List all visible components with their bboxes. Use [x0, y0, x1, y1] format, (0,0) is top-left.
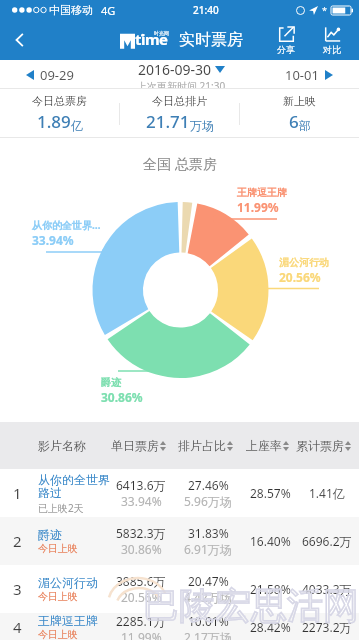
staticText: 21.71: [146, 110, 190, 133]
staticText: 今日上映: [38, 590, 78, 603]
button[interactable]: 今日总排片: [120, 94, 239, 133]
staticText: 上次更新时间 21:30: [137, 79, 226, 89]
button[interactable]: 09-29: [22, 62, 78, 88]
staticText: 王牌逗王牌: [38, 613, 98, 628]
button[interactable]: 新上映: [240, 94, 359, 133]
staticText: 新上映: [283, 94, 316, 108]
button[interactable]: 4: [0, 613, 359, 640]
staticText: 30.86%: [101, 389, 143, 405]
staticText: 上座率: [246, 438, 282, 453]
staticText: 今日总票房: [32, 94, 87, 108]
staticText: 21.58%: [250, 581, 291, 597]
staticText: 2: [13, 531, 22, 551]
button[interactable]: 上座率: [246, 438, 289, 453]
staticText: 4.42万场: [184, 589, 232, 605]
staticText: 分享: [277, 44, 295, 55]
staticText: 16.40%: [250, 533, 291, 549]
staticText: 5.96万场: [184, 493, 232, 509]
staticText: 中国移动: [49, 3, 93, 17]
staticText: 4: [13, 617, 22, 637]
button[interactable]: 10-01: [281, 62, 337, 88]
staticText: 21:40: [193, 3, 219, 17]
staticText: 部: [299, 118, 311, 133]
staticText: 已上映2天: [38, 501, 84, 515]
button[interactable]: 影片名称: [38, 438, 86, 453]
staticText: 时光网: [154, 30, 169, 36]
staticText: 2285.1万: [116, 613, 166, 629]
staticText: 28.57%: [250, 485, 291, 501]
staticText: 28.42%: [250, 619, 291, 635]
button[interactable]: 2016-09-30: [137, 60, 226, 89]
button[interactable]: 单日票房: [111, 438, 166, 453]
staticText: 累计票房: [296, 438, 344, 453]
staticText: 20.56%: [279, 269, 321, 285]
staticText: 3: [13, 579, 22, 599]
staticText: *: [322, 4, 327, 16]
staticText: 2273.2万: [302, 619, 352, 635]
staticText: 1.89: [37, 110, 71, 133]
button[interactable]: 1: [0, 469, 359, 517]
staticText: 湄公河行动: [279, 256, 329, 269]
staticText: 6.91万场: [184, 541, 232, 557]
staticText: 4G: [101, 3, 116, 18]
staticText: 6413.6万: [116, 477, 166, 493]
staticText: 今日总排片: [152, 94, 207, 108]
staticText: 11.99%: [237, 199, 279, 215]
staticText: 10-01: [285, 66, 319, 84]
staticText: 11.99%: [121, 629, 162, 640]
staticText: 单日票房: [111, 438, 159, 453]
staticText: 33.94%: [32, 232, 74, 248]
staticText: 湄公河行动: [38, 575, 98, 590]
button[interactable]: 累计票房: [296, 438, 351, 453]
staticText: 1.41亿: [309, 485, 345, 501]
staticText: 爵迹: [38, 527, 62, 542]
staticText: 爵迹: [101, 376, 121, 389]
staticText: 4033.3万: [302, 581, 352, 597]
staticText: 6: [289, 110, 299, 133]
staticText: 王牌逗王牌: [237, 186, 287, 199]
staticText: 20.47%: [188, 573, 229, 589]
button[interactable]: 今日总票房: [0, 94, 119, 133]
staticText: 实时票房: [179, 30, 243, 50]
staticText: 从你的全世界路过: [38, 472, 110, 501]
staticText: 2016-09-30: [138, 60, 212, 79]
staticText: 3885.6万: [116, 573, 166, 589]
staticText: 20.56%: [121, 589, 162, 605]
button[interactable]: Back: [0, 20, 40, 60]
staticText: 万场: [190, 118, 214, 133]
staticText: 对比: [323, 44, 341, 55]
staticText: time: [135, 29, 168, 49]
staticText: 全国 总票房: [143, 154, 217, 173]
staticText: 10.01%: [188, 613, 229, 629]
button[interactable]: 对比: [311, 24, 353, 57]
staticText: 09-29: [40, 66, 74, 84]
staticText: 31.83%: [188, 525, 229, 541]
staticText: 27.46%: [188, 477, 229, 493]
staticText: 30.86%: [121, 541, 162, 557]
staticText: 排片占比: [178, 438, 226, 453]
staticText: 2.17万场: [184, 629, 232, 640]
staticText: 影片名称: [38, 438, 86, 453]
staticText: 5832.3万: [116, 525, 166, 541]
staticText: 今日上映: [38, 628, 78, 640]
staticText: 今日上映: [38, 542, 78, 555]
button[interactable]: 2: [0, 517, 359, 565]
staticText: 6696.2万: [302, 533, 352, 549]
staticText: 亿: [71, 118, 83, 133]
staticText: 33.94%: [121, 493, 162, 509]
button[interactable]: 排片占比: [178, 438, 233, 453]
staticText: 1: [13, 483, 22, 503]
button[interactable]: 3: [0, 565, 359, 613]
staticText: 从你的全世界…: [32, 218, 101, 232]
button[interactable]: 分享: [265, 24, 307, 57]
